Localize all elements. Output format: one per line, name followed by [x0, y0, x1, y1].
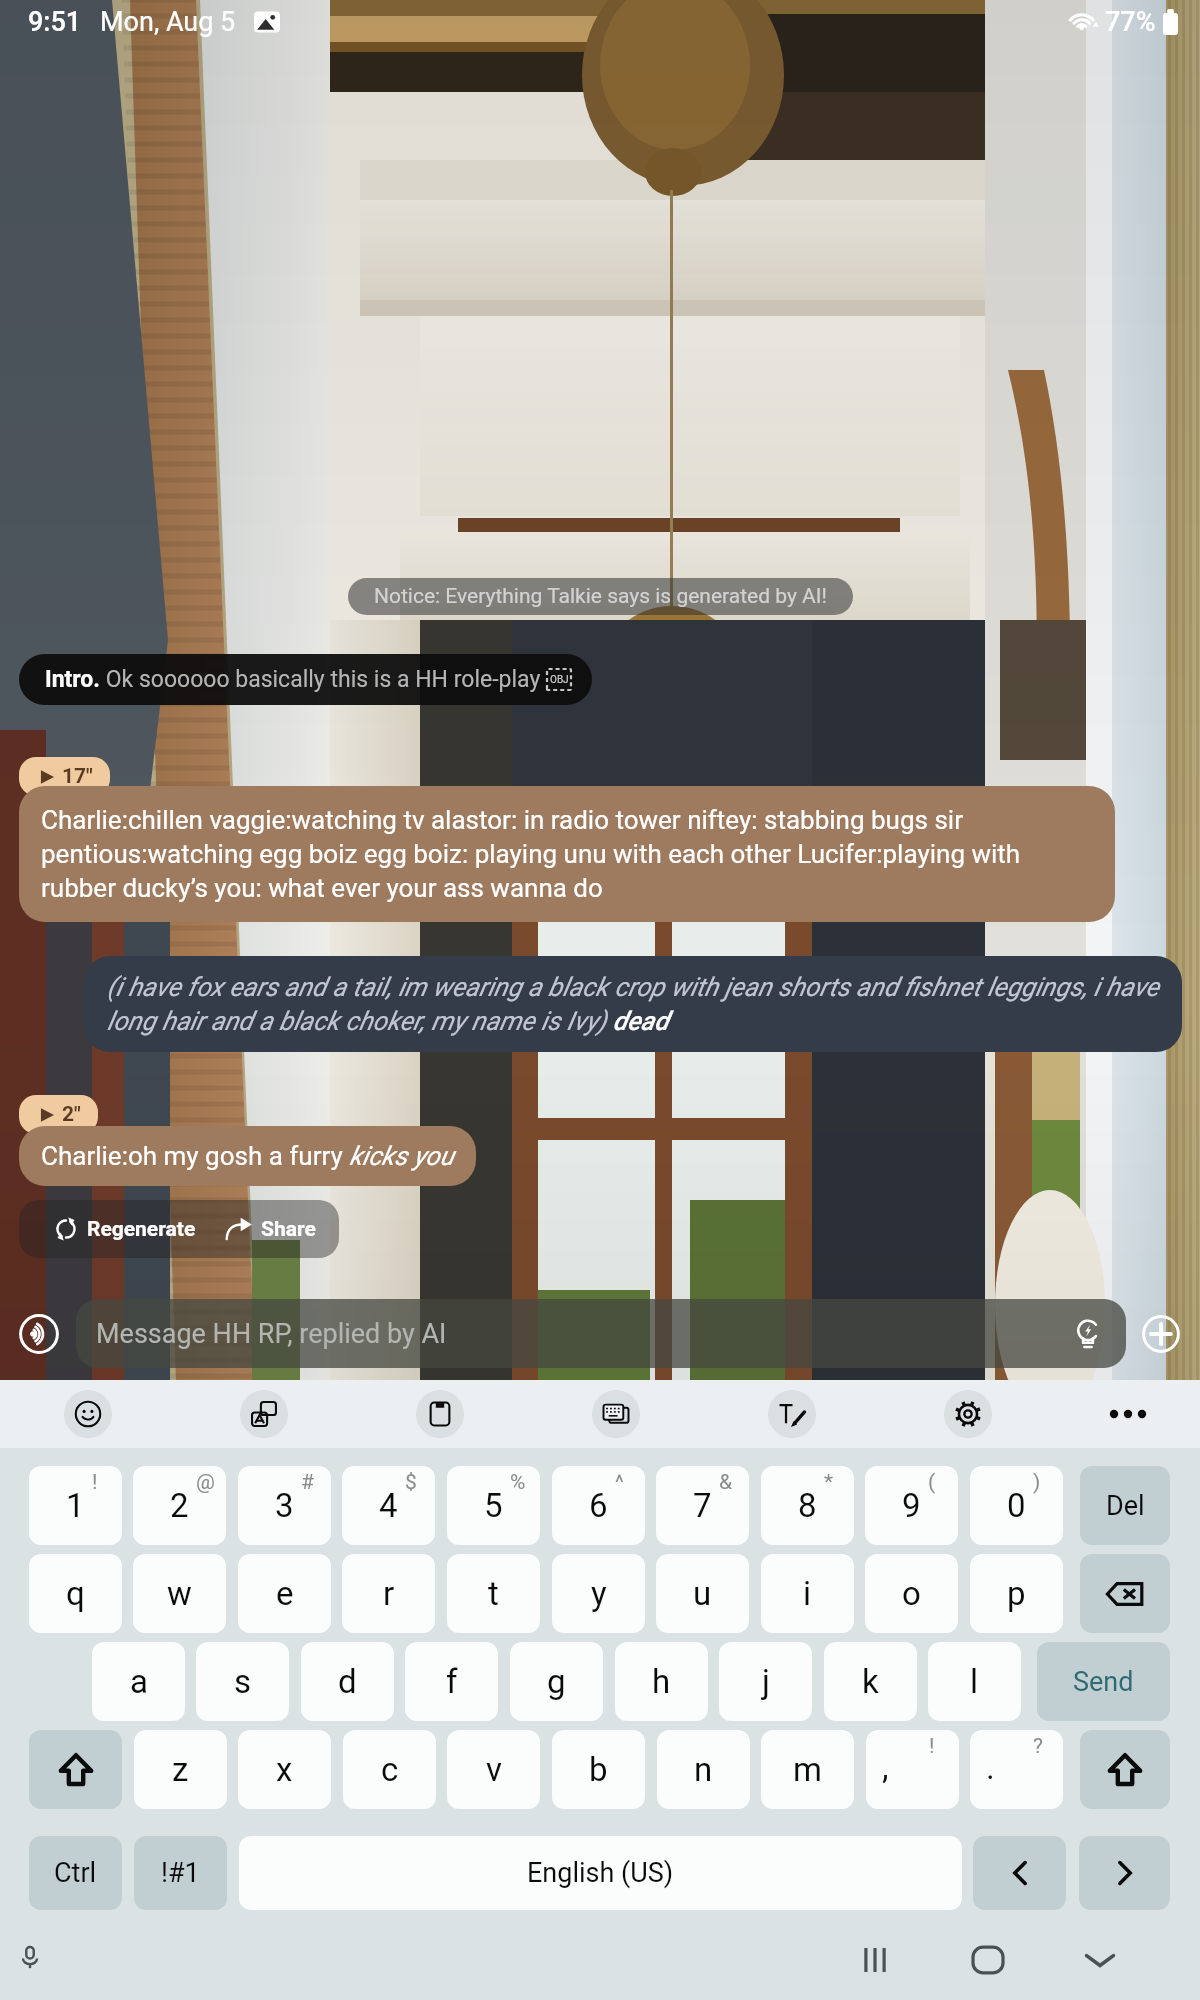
button[interactable]: Voice input — [19, 1314, 59, 1354]
button[interactable]: t — [447, 1554, 540, 1633]
button[interactable]: Home — [958, 1930, 1018, 1990]
staticText: i — [803, 1574, 812, 1613]
button[interactable]: 6 — [552, 1466, 645, 1545]
button[interactable]: b — [552, 1730, 645, 1809]
staticText: 2 — [170, 1486, 189, 1525]
button[interactable]: !#1 — [134, 1836, 227, 1910]
staticText: English (US) — [527, 1857, 674, 1889]
staticText: & — [719, 1470, 733, 1495]
button[interactable]: Charlie:chillen vaggie:watching tv alast… — [19, 786, 1115, 922]
button[interactable]: (i have fox ears and a tail, im wearing … — [84, 956, 1182, 1052]
staticText: . — [986, 1748, 995, 1787]
button[interactable]: 3 — [238, 1466, 331, 1545]
button[interactable]: shift — [1080, 1730, 1170, 1809]
button[interactable]: Share — [210, 1200, 336, 1258]
button[interactable]: 2 — [133, 1466, 226, 1545]
button[interactable]: g — [510, 1642, 603, 1721]
button[interactable]: , — [866, 1730, 959, 1809]
staticText: ? — [1033, 1734, 1043, 1759]
staticText: y — [591, 1574, 607, 1613]
button[interactable]: y — [552, 1554, 645, 1633]
button[interactable]: a — [92, 1642, 185, 1721]
button[interactable]: o — [865, 1554, 958, 1633]
button[interactable]: s — [196, 1642, 289, 1721]
button[interactable]: l — [928, 1642, 1021, 1721]
button[interactable]: c — [343, 1730, 436, 1809]
button[interactable]: More options — [1104, 1390, 1152, 1438]
staticText: ( — [928, 1470, 936, 1495]
button[interactable]: Translate — [240, 1390, 288, 1438]
button[interactable]: Settings — [944, 1390, 992, 1438]
button[interactable]: n — [657, 1730, 750, 1809]
button[interactable]: 5 — [447, 1466, 540, 1545]
button[interactable]: e — [238, 1554, 331, 1633]
button[interactable]: 4 — [342, 1466, 435, 1545]
button[interactable]: Recents — [845, 1930, 905, 1990]
staticText: Mon, Aug 5 — [100, 6, 236, 38]
staticText: % — [510, 1470, 526, 1495]
button[interactable]: 0 — [970, 1466, 1063, 1545]
button[interactable]: shift — [29, 1730, 122, 1809]
button[interactable]: r — [342, 1554, 435, 1633]
button[interactable]: Emoji — [64, 1390, 112, 1438]
button[interactable]: h — [615, 1642, 708, 1721]
button[interactable]: i — [761, 1554, 854, 1633]
staticText: a — [130, 1662, 148, 1701]
button[interactable]: v — [447, 1730, 540, 1809]
button[interactable]: English (US) — [239, 1836, 962, 1910]
button[interactable]: z — [134, 1730, 227, 1809]
staticText: 5 — [484, 1486, 503, 1525]
button[interactable]: q — [29, 1554, 122, 1633]
staticText: 17" — [62, 764, 93, 789]
button[interactable]: f — [405, 1642, 498, 1721]
button[interactable]: Microphone — [8, 1936, 52, 1980]
button[interactable]: Hide keyboard — [1070, 1930, 1130, 1990]
staticText: d — [338, 1662, 357, 1701]
button[interactable]: right — [1079, 1836, 1170, 1910]
button[interactable]: backspace — [1080, 1554, 1170, 1633]
staticText: Message HH RP, replied by AI — [96, 1318, 447, 1350]
button[interactable]: j — [719, 1642, 812, 1721]
button[interactable]: u — [656, 1554, 749, 1633]
button[interactable]: p — [970, 1554, 1063, 1633]
staticText: !#1 — [161, 1857, 200, 1889]
button[interactable]: 2" — [19, 1095, 98, 1134]
staticText: 7 — [693, 1486, 712, 1525]
staticText: 6 — [589, 1486, 608, 1525]
button[interactable]: Notice: Everything Talkie says is genera… — [348, 578, 853, 615]
button[interactable]: Ctrl — [29, 1836, 122, 1910]
button[interactable]: x — [238, 1730, 331, 1809]
button[interactable]: 17" — [19, 757, 110, 796]
staticText: Share — [261, 1217, 316, 1242]
button[interactable]: Keyboard modes — [592, 1390, 640, 1438]
button[interactable]: d — [301, 1642, 394, 1721]
staticText: Ctrl — [54, 1857, 97, 1889]
button[interactable]: 1 — [29, 1466, 122, 1545]
button[interactable]: 7 — [656, 1466, 749, 1545]
button[interactable]: Del — [1080, 1466, 1170, 1545]
staticText: Notice: Everything Talkie says is genera… — [374, 584, 827, 609]
button[interactable]: Message HH RP, replied by AI — [76, 1299, 1126, 1368]
staticText: Send — [1073, 1666, 1134, 1698]
staticText: 1 — [66, 1486, 85, 1525]
staticText: c — [381, 1750, 399, 1789]
button[interactable]: Charlie:oh my gosh a furry kicks you — [19, 1126, 476, 1186]
staticText: u — [693, 1574, 712, 1613]
button[interactable]: left — [973, 1836, 1066, 1910]
button[interactable]: Send — [1037, 1642, 1170, 1721]
button[interactable]: 9 — [865, 1466, 958, 1545]
staticText: 8 — [798, 1486, 817, 1525]
button[interactable]: w — [133, 1554, 226, 1633]
button[interactable]: Add attachment — [1142, 1315, 1180, 1353]
button[interactable]: . — [970, 1730, 1063, 1809]
button[interactable]: k — [824, 1642, 917, 1721]
button[interactable]: Clipboard — [416, 1390, 464, 1438]
staticText: f — [446, 1662, 458, 1701]
button[interactable]: Regenerate — [19, 1200, 210, 1258]
button[interactable]: Handwriting — [768, 1390, 816, 1438]
staticText: Charlie:oh my gosh a furry kicks you — [41, 1141, 454, 1171]
button[interactable]: 8 — [761, 1466, 854, 1545]
button[interactable]: m — [761, 1730, 854, 1809]
staticText: ! — [929, 1734, 935, 1759]
button[interactable]: Intro. Ok soooooo basically this is a HH… — [19, 654, 592, 705]
